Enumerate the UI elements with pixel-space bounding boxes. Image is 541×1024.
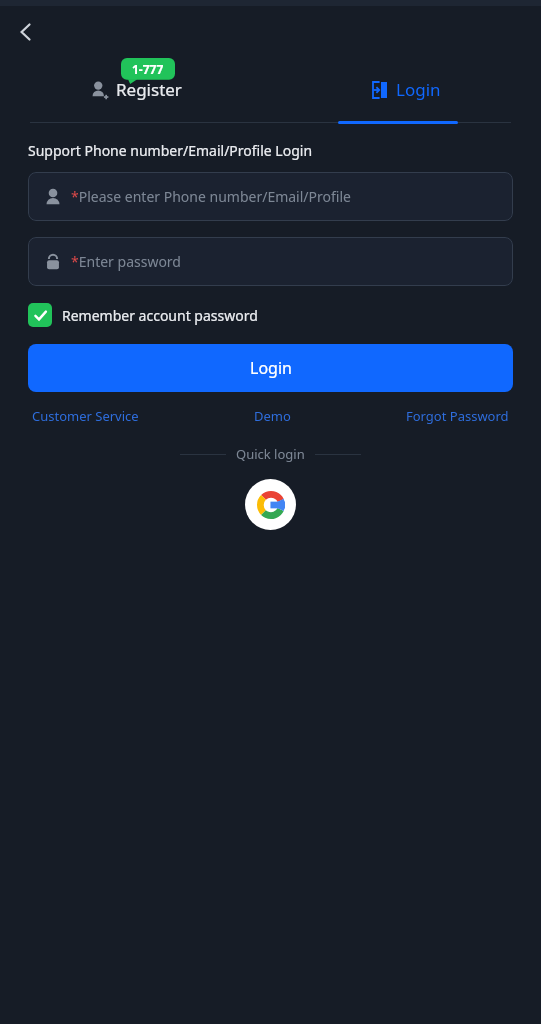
button[interactable]: *Please enter Phone number/Email/Profile [28,172,513,221]
staticText: Login [250,357,292,379]
button[interactable]: Register [0,58,270,120]
staticText: 1-777 [132,61,164,77]
staticText: Forgot Password [406,407,509,425]
staticText: Register [116,78,182,101]
staticText: Support Phone number/Email/Profile Login [28,141,313,160]
staticText: Remember account password [62,306,258,325]
button[interactable]: Customer Service [28,403,143,429]
button[interactable]: *Enter password [28,237,513,286]
staticText: Login [396,78,441,101]
staticText: *Enter password [71,252,181,271]
button[interactable]: Demo [250,403,295,429]
button[interactable]: Sign in with Google [245,479,296,530]
button[interactable]: Login [28,344,513,392]
staticText: *Please enter Phone number/Email/Profile [71,187,351,206]
staticText: Quick login [236,445,305,463]
button[interactable]: Remember account password [28,303,258,327]
staticText: Demo [254,407,291,425]
button[interactable]: Forgot Password [402,403,513,429]
staticText: Customer Service [32,407,139,425]
button[interactable]: Login [270,58,541,120]
button[interactable]: Back [0,6,52,58]
